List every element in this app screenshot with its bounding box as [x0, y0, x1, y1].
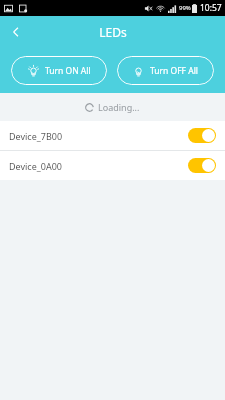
button[interactable]: Toggle device: [188, 158, 216, 173]
staticText: Device_7B00: [9, 130, 63, 142]
staticText: 10:57: [200, 2, 222, 14]
button[interactable]: Turn OFF All: [117, 56, 214, 85]
button[interactable]: Device_7B00: [0, 121, 225, 150]
staticText: 99%: [179, 4, 191, 12]
staticText: Device_0A00: [9, 160, 62, 172]
staticText: Loading...: [98, 101, 140, 113]
staticText: Turn OFF All: [150, 65, 199, 77]
staticText: Turn ON All: [45, 65, 91, 77]
button[interactable]: Back: [0, 16, 32, 48]
staticText: LEDs: [99, 24, 127, 40]
button[interactable]: Toggle device: [188, 128, 216, 143]
button[interactable]: Device_0A00: [0, 151, 225, 180]
button[interactable]: Turn ON All: [11, 56, 107, 85]
